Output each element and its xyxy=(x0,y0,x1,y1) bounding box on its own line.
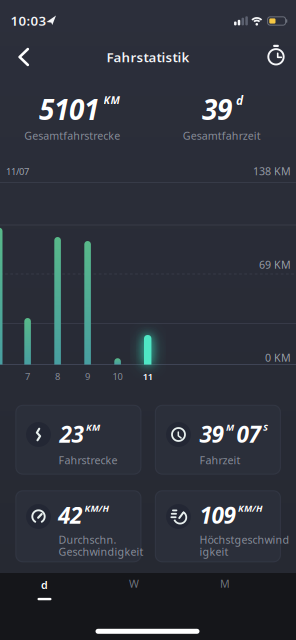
staticText: Fahrstatistik xyxy=(106,48,189,66)
button[interactable]: Trip timer xyxy=(255,35,296,79)
button[interactable]: M xyxy=(206,568,244,599)
staticText: 109 xyxy=(199,500,235,530)
staticText: M xyxy=(220,576,230,591)
staticText: 39 xyxy=(199,419,223,449)
staticText: 23 xyxy=(59,419,83,449)
staticText: 5101 xyxy=(39,90,99,128)
staticText: Fahrstrecke xyxy=(58,453,117,467)
staticText: 10 xyxy=(113,370,123,383)
button[interactable]: W xyxy=(115,568,153,599)
staticText: KM xyxy=(86,421,100,433)
staticText: 11/07 xyxy=(6,165,29,178)
staticText: 138 KM xyxy=(253,164,291,178)
staticText: KM/H xyxy=(238,502,263,514)
button[interactable]: Back xyxy=(7,36,41,77)
staticText: Fahrzeit xyxy=(199,453,240,467)
staticText: 9 xyxy=(85,370,90,383)
staticText: 39 xyxy=(202,90,232,128)
staticText: 8 xyxy=(55,370,60,383)
staticText: 07 xyxy=(236,419,260,449)
staticText: Gesamtfahrzeit xyxy=(183,128,261,143)
staticText: 69 KM xyxy=(259,257,291,272)
staticText: 42 xyxy=(58,500,82,530)
staticText: d xyxy=(236,92,243,108)
staticText: Geschwindigkeit xyxy=(58,544,143,559)
staticText: 11 xyxy=(143,370,153,383)
staticText: KM xyxy=(103,93,119,107)
staticText: S xyxy=(263,421,268,433)
staticText: igkeit xyxy=(199,544,228,559)
staticText: 10:03 xyxy=(10,12,46,29)
staticText: d xyxy=(41,578,48,592)
staticText: 7 xyxy=(25,370,30,383)
staticText: KM/H xyxy=(84,502,109,514)
staticText: M xyxy=(226,421,234,433)
staticText: Gesamtfahrstrecke xyxy=(24,128,120,143)
button[interactable]: d xyxy=(23,574,65,604)
staticText: Durchschn. xyxy=(58,532,116,547)
staticText: 0 KM xyxy=(265,350,291,365)
staticText: W xyxy=(129,576,139,591)
staticText: Höchstgeschwind xyxy=(199,532,289,547)
